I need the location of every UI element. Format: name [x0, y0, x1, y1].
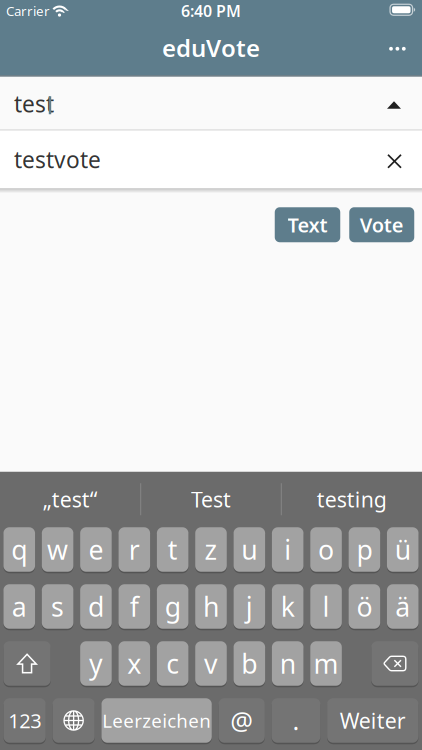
button[interactable]: Leerzeichen [101, 698, 212, 743]
button[interactable]: n [272, 641, 303, 686]
staticText: c [166, 646, 179, 681]
button[interactable]: ö [349, 584, 380, 629]
button[interactable]: z [195, 527, 227, 572]
button[interactable]: Weiter [327, 698, 418, 743]
staticText: testvote [14, 144, 101, 174]
staticText: l [323, 589, 330, 624]
button[interactable] [380, 32, 414, 66]
button[interactable]: ä [387, 584, 419, 629]
staticText: Vote [360, 211, 404, 238]
staticText: i [284, 532, 291, 567]
button[interactable] [377, 144, 411, 178]
button[interactable]: c [157, 641, 188, 686]
button[interactable]: f [118, 584, 150, 629]
staticText: u [241, 532, 257, 567]
button[interactable]: testvote [14, 131, 354, 188]
button[interactable]: o [310, 527, 342, 572]
staticText: Carrier [6, 2, 50, 20]
staticText: Leerzeichen [102, 708, 211, 733]
staticText: 6:40 PM [181, 0, 241, 21]
button[interactable]: q [3, 527, 35, 572]
button[interactable]: . [272, 698, 320, 743]
button[interactable] [377, 93, 411, 117]
staticText: ä [395, 589, 410, 624]
staticText: h [203, 589, 219, 624]
button[interactable]: b [234, 641, 265, 686]
staticText: Weiter [340, 706, 406, 735]
staticText: „test“ [43, 485, 98, 513]
staticText: n [280, 646, 296, 681]
button[interactable]: @ [218, 698, 265, 743]
button[interactable]: 123 [4, 698, 46, 743]
staticText: @ [230, 704, 253, 737]
staticText: m [314, 646, 339, 681]
staticText: testing [317, 485, 387, 513]
staticText: Text [287, 211, 327, 238]
button[interactable]: t [157, 527, 188, 572]
staticText: y [89, 646, 103, 681]
staticText: q [11, 532, 27, 567]
staticText: d [88, 589, 104, 624]
staticText: ö [356, 589, 372, 624]
button[interactable]: ü [387, 527, 419, 572]
staticText: o [318, 532, 334, 567]
button[interactable]: g [157, 584, 188, 629]
button[interactable]: e [80, 527, 112, 572]
button[interactable] [52, 698, 95, 743]
button[interactable] [3, 641, 51, 686]
button[interactable]: d [80, 584, 112, 629]
button[interactable]: x [118, 641, 150, 686]
button[interactable]: Text [275, 207, 340, 242]
staticText: e [88, 532, 103, 567]
button[interactable]: Vote [349, 207, 414, 242]
staticText: r [129, 532, 140, 567]
staticText: p [356, 532, 372, 567]
button[interactable]: s [42, 584, 73, 629]
staticText: v [204, 646, 218, 681]
button[interactable]: j [234, 584, 265, 629]
button[interactable]: v [195, 641, 227, 686]
button[interactable]: a [3, 584, 35, 629]
staticText: g [165, 589, 181, 624]
button[interactable] [371, 641, 418, 686]
staticText: eduVote [162, 32, 260, 64]
staticText: x [127, 646, 141, 681]
button[interactable]: u [234, 527, 265, 572]
staticText: z [204, 532, 217, 567]
button[interactable]: r [118, 527, 150, 572]
button[interactable]: p [349, 527, 380, 572]
staticText: Test [191, 485, 231, 513]
button[interactable]: w [42, 527, 73, 572]
staticText: 123 [8, 707, 41, 734]
button[interactable]: y [80, 641, 112, 686]
staticText: a [12, 589, 27, 624]
button[interactable]: l [310, 584, 342, 629]
staticText: s [51, 589, 64, 624]
staticText: w [47, 532, 68, 567]
button[interactable]: h [195, 584, 227, 629]
button[interactable]: m [310, 641, 342, 686]
staticText: j [246, 589, 253, 624]
staticText: . [292, 704, 299, 737]
button[interactable]: i [272, 527, 303, 572]
staticText: test [14, 89, 54, 119]
button[interactable]: k [272, 584, 303, 629]
staticText: b [241, 646, 257, 681]
staticText: ü [395, 532, 411, 567]
staticText: k [281, 589, 295, 624]
staticText: t [168, 532, 178, 567]
staticText: f [130, 589, 139, 624]
